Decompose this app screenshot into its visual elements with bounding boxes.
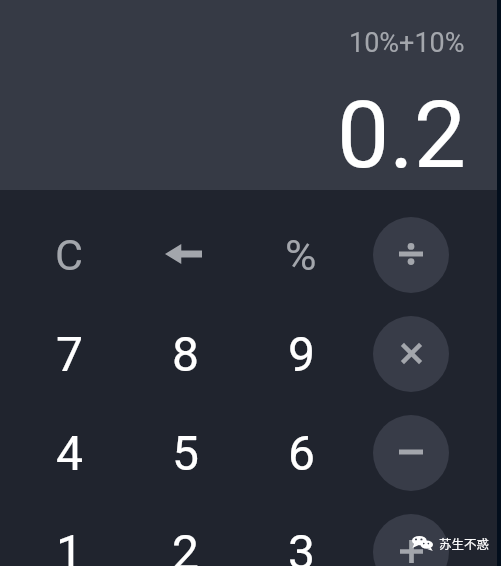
button[interactable]: 8 [135,304,235,404]
staticText: 3 [288,524,315,566]
button[interactable]: 5 [135,403,235,503]
staticText: 1 [56,524,83,566]
staticText: % [285,230,317,280]
staticText: 5 [172,425,199,481]
button[interactable]: 1 [19,502,119,566]
staticText: 7 [56,326,83,382]
staticText: 4 [56,425,83,481]
button[interactable]: 3 [251,502,351,566]
button[interactable]: 7 [19,304,119,404]
button[interactable]: Subtract [361,403,461,503]
staticText: C [55,230,83,280]
staticText: 0.2 [337,81,467,190]
staticText: 10%+10% [349,27,465,59]
button[interactable]: 4 [19,403,119,503]
button[interactable]: 6 [251,403,351,503]
button[interactable]: Divide [361,205,461,305]
button[interactable]: % [251,205,351,305]
button[interactable]: Multiply [361,304,461,404]
staticText: 2 [172,524,199,566]
staticText: 8 [172,326,199,382]
button[interactable]: Add [361,502,461,566]
staticText: 9 [288,326,315,382]
button[interactable]: 9 [251,304,351,404]
staticText: 苏生不惑 [439,534,490,552]
button[interactable]: Backspace [135,205,235,305]
button[interactable]: 2 [135,502,235,566]
staticText: 6 [288,425,315,481]
button[interactable]: C [19,205,119,305]
